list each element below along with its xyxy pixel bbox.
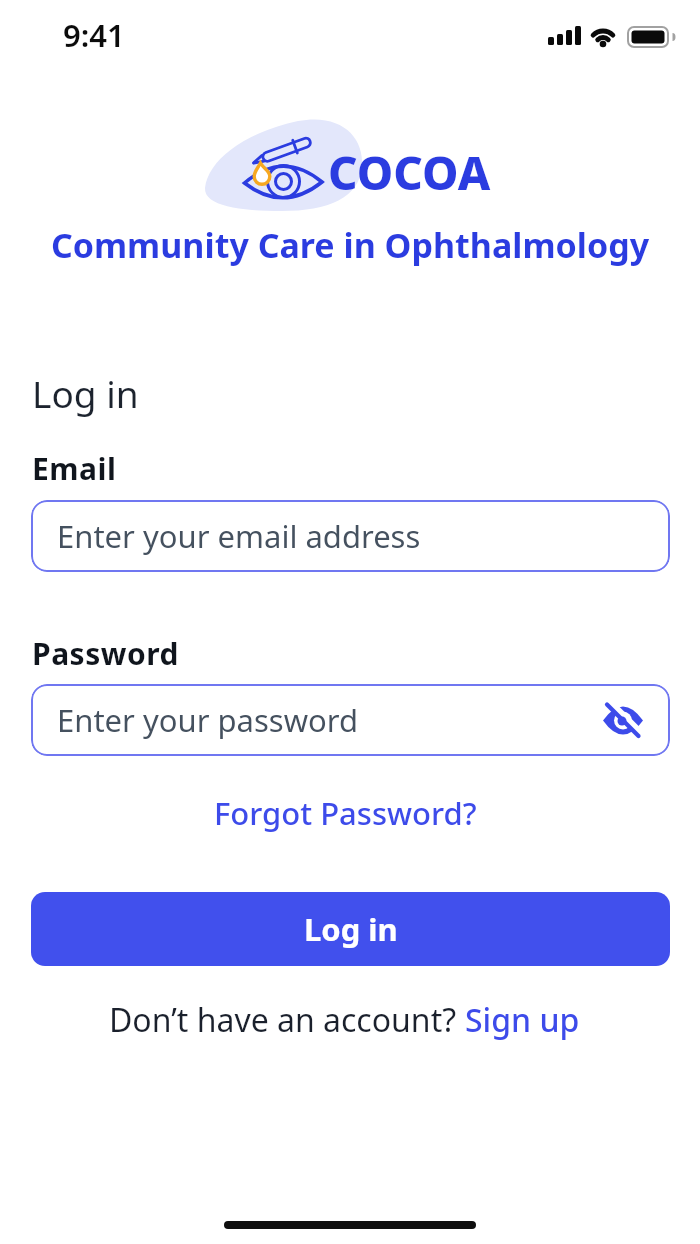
staticText: Log in [304,908,398,950]
button[interactable]: Log in [31,892,670,966]
button[interactable]: Sign up [465,998,580,1042]
button[interactable]: Enter your password [31,684,670,756]
staticText: 9:41 [63,14,125,56]
staticText: Log in [32,368,139,418]
staticText: Community Care in Ophthalmology [0,222,700,268]
staticText: Email [32,448,117,489]
staticText: Forgot Password? [214,792,477,834]
button[interactable]: Forgot Password? [214,792,477,834]
button[interactable] [601,698,645,742]
staticText: Enter your password [57,699,359,741]
staticText: Password [32,633,179,674]
staticText: Sign up [465,998,580,1042]
button[interactable]: Enter your email address [31,500,670,572]
staticText: Don’t have an account? [109,998,465,1042]
staticText: COCOA [328,141,491,204]
staticText: Enter your email address [57,515,421,557]
